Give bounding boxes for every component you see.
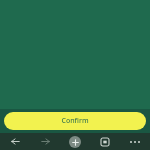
button[interactable]: Forward <box>30 133 60 150</box>
staticText: Confirm <box>61 116 89 126</box>
button[interactable]: Back <box>0 133 30 150</box>
button[interactable]: Tabs <box>90 133 120 150</box>
button[interactable]: Confirm <box>4 112 146 130</box>
button[interactable]: New tab <box>60 133 90 150</box>
button[interactable]: More options <box>120 133 150 150</box>
